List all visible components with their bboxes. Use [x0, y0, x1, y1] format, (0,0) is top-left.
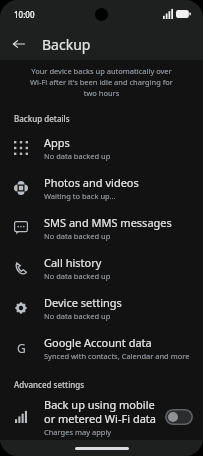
staticText: G	[17, 340, 26, 356]
staticText: SMS and MMS messages	[44, 215, 172, 230]
button[interactable]: Photos and videos	[0, 168, 203, 208]
staticText: No data backed up	[44, 271, 111, 281]
button[interactable]: Back up using mobile or metered Wi-Fi da…	[165, 409, 193, 425]
staticText: Backup	[42, 35, 91, 54]
staticText: Apps	[44, 135, 70, 150]
staticText: Device settings	[44, 295, 122, 310]
staticText: Call history	[44, 255, 102, 270]
staticText: Backup details	[14, 113, 70, 124]
button[interactable]: Back up using mobile or metered Wi-Fi da…	[0, 394, 203, 440]
staticText: Google Account data	[44, 335, 152, 350]
staticText: Synced with contacts, Calendar and more	[44, 351, 190, 361]
staticText: No data backed up	[44, 151, 111, 161]
staticText: Charges may apply	[44, 427, 112, 437]
staticText: Advanced settings	[14, 379, 85, 390]
staticText: No data backed up	[44, 311, 111, 321]
button[interactable]: Apps	[0, 128, 203, 168]
staticText: Waiting to back up…	[44, 191, 116, 201]
staticText: Your device backs up automatically over …	[26, 66, 177, 98]
staticText: Back up using mobile or metered Wi-Fi da…	[44, 397, 159, 426]
button[interactable]: SMS and MMS messages	[0, 208, 203, 248]
button[interactable]: Back	[6, 31, 32, 57]
button[interactable]: Call history	[0, 248, 203, 288]
button[interactable]: G	[0, 328, 203, 368]
button[interactable]: Device settings	[0, 288, 203, 328]
staticText: 10:00	[14, 9, 35, 20]
staticText: Photos and videos	[44, 175, 139, 190]
staticText: No data backed up	[44, 231, 111, 241]
